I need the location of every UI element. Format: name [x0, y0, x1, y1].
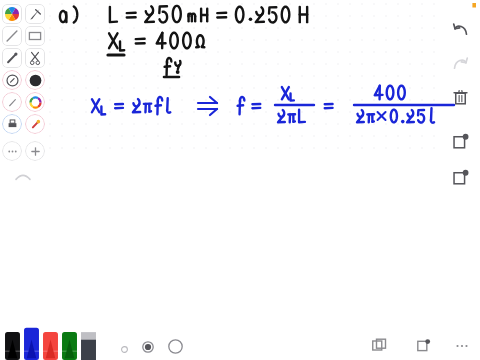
button[interactable]: Collapse palette: [12, 171, 34, 183]
button[interactable]: Fill colour: [25, 70, 45, 90]
button[interactable]: Pages: [364, 330, 394, 360]
button[interactable]: Eraser: [2, 48, 22, 68]
button[interactable]: Marker: [25, 114, 45, 134]
button[interactable]: Add page: [408, 330, 438, 360]
button[interactable]: Pen tool: [25, 4, 45, 24]
button[interactable]: Thick stroke: [161, 332, 189, 360]
button[interactable]: Thin stroke: [113, 338, 135, 360]
button[interactable]: Pen: [61, 326, 78, 360]
button[interactable]: Stamp: [2, 114, 22, 134]
button[interactable]: Pen: [23, 326, 40, 360]
button[interactable]: Line tool: [2, 26, 22, 46]
button[interactable]: Add tool: [25, 141, 45, 161]
button[interactable]: More options: [448, 332, 476, 360]
button[interactable]: Eraser: [80, 326, 97, 360]
button[interactable]: Delete: [445, 82, 475, 112]
button[interactable]: Highlighter: [2, 70, 22, 90]
button[interactable]: Rectangle tool: [25, 26, 45, 46]
button[interactable]: Undo: [445, 14, 475, 44]
button[interactable]: Colour palette: [2, 4, 22, 24]
button[interactable]: Add page: [445, 162, 475, 192]
button[interactable]: Pen: [42, 326, 59, 360]
button[interactable]: Pen: [4, 326, 21, 360]
button[interactable]: Scissors: [25, 48, 45, 68]
button[interactable]: Copy page: [445, 126, 475, 156]
button[interactable]: Redo: [445, 48, 475, 78]
button[interactable]: More tools: [2, 141, 22, 161]
button[interactable]: Medium stroke, selected: [135, 334, 161, 360]
button[interactable]: Thin pen: [2, 92, 22, 112]
button[interactable]: Colour wheel: [25, 92, 45, 112]
